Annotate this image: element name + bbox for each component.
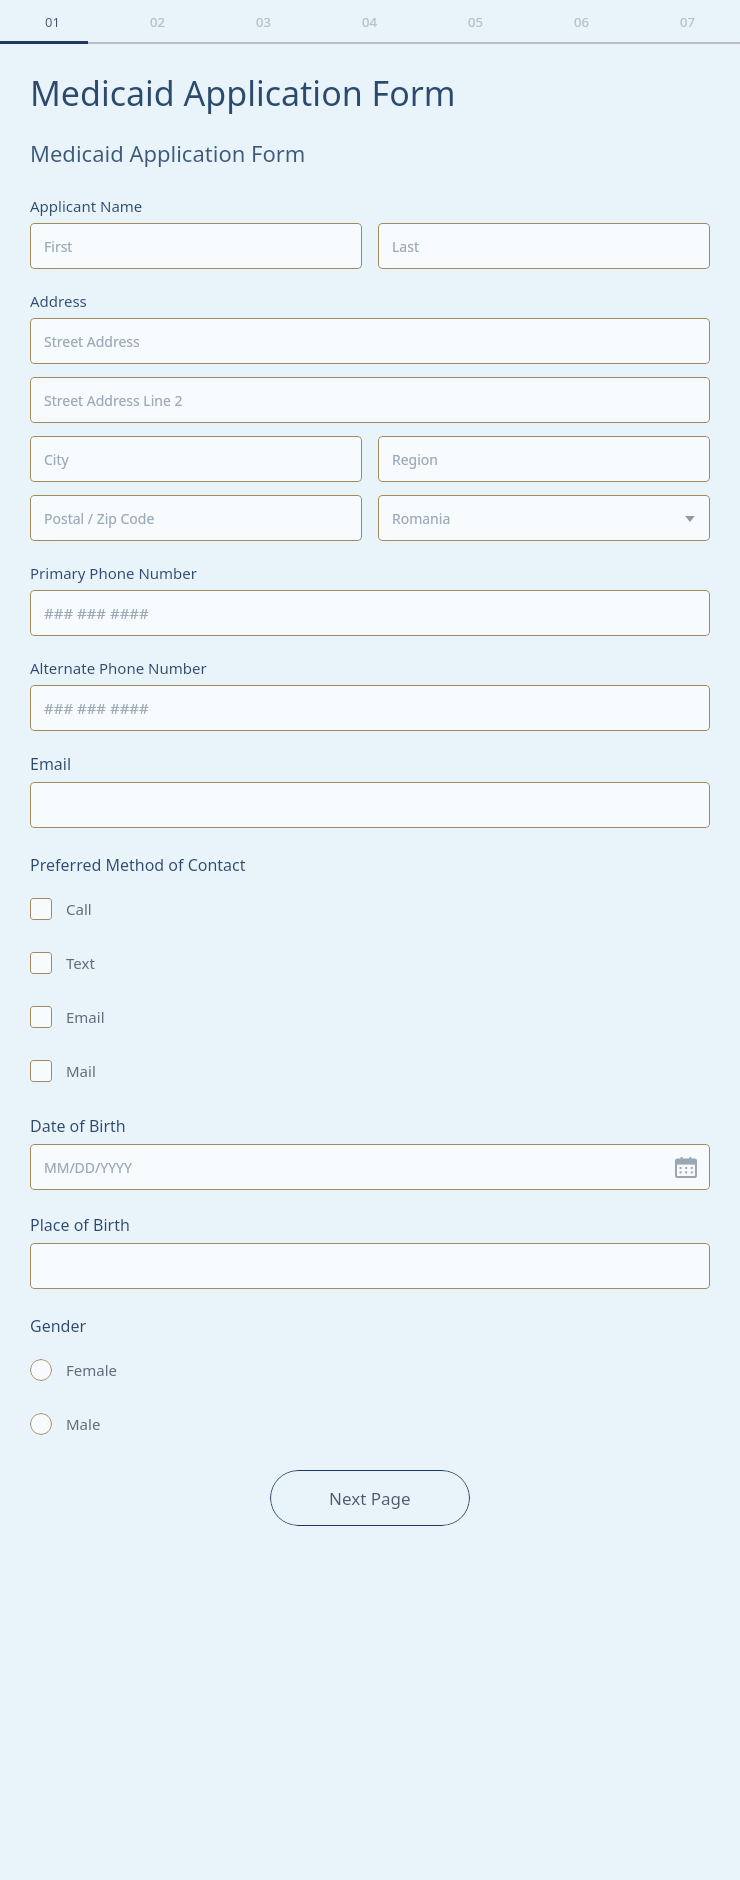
staticText: MM/DD/YYYY [44,1158,676,1177]
staticText: Street Address Line 2 [44,391,696,410]
button[interactable]: Street Address [30,318,710,364]
button[interactable]: 05 [422,0,528,44]
staticText: ### ### #### [44,698,696,718]
staticText: Gender [30,1315,87,1337]
staticText: Medicaid Application Form [30,138,306,168]
button[interactable]: 01 [0,0,105,44]
staticText: City [44,450,348,469]
button[interactable]: Next Page [270,1470,470,1526]
button[interactable]: ### ### #### [30,685,710,731]
button[interactable]: Female [30,1350,710,1390]
staticText: Mail [66,1061,96,1081]
button[interactable]: 03 [210,0,316,44]
button[interactable]: Street Address Line 2 [30,377,710,423]
button[interactable]: Region [378,436,710,482]
staticText: Male [66,1414,101,1434]
staticText: First [44,237,348,256]
staticText: Region [392,450,696,469]
staticText: Call [66,899,92,919]
button[interactable]: 07 [634,0,740,44]
button[interactable]: 04 [316,0,422,44]
button[interactable]: Male [30,1404,710,1444]
staticText: Place of Birth [30,1214,130,1236]
staticText: Email [30,753,72,775]
button[interactable]: 02 [105,0,210,44]
staticText: Email [66,1007,105,1027]
staticText: Postal / Zip Code [44,509,348,528]
staticText: 01 [45,13,60,31]
staticText: Last [392,237,696,256]
staticText: 05 [468,13,483,31]
staticText: 04 [362,13,377,31]
button[interactable]: Romania [378,495,710,541]
staticText: Text [66,953,95,973]
staticText: Date of Birth [30,1115,126,1137]
staticText: Address [30,291,87,311]
staticText: Preferred Method of Contact [30,854,246,876]
button[interactable] [30,1243,710,1289]
staticText: 07 [680,13,695,31]
staticText: Romania [392,509,684,528]
staticText: Medicaid Application Form [30,70,456,116]
button[interactable]: Last [378,223,710,269]
staticText: 03 [256,13,271,31]
button[interactable] [30,782,710,828]
staticText: Alternate Phone Number [30,658,207,678]
staticText: Female [66,1360,118,1380]
button[interactable]: First [30,223,362,269]
button[interactable]: MM/DD/YYYY [30,1144,710,1190]
button[interactable]: Text [30,943,710,983]
staticText: Street Address [44,332,696,351]
button[interactable]: Mail [30,1051,710,1091]
button[interactable]: ### ### #### [30,590,710,636]
button[interactable]: 06 [528,0,634,44]
staticText: Primary Phone Number [30,563,197,583]
staticText: 02 [150,13,165,31]
staticText: Next Page [329,1487,411,1510]
other: Open calendar [676,1157,696,1177]
button[interactable]: Postal / Zip Code [30,495,362,541]
button[interactable]: City [30,436,362,482]
staticText: ### ### #### [44,603,696,623]
staticText: Applicant Name [30,196,143,216]
staticText: 06 [574,13,589,31]
button[interactable]: Call [30,889,710,929]
button[interactable]: Email [30,997,710,1037]
